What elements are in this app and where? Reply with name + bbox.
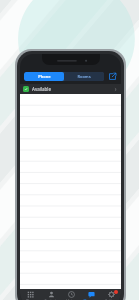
- staticText: History: [66, 299, 77, 300]
- staticText: Messages: [83, 299, 99, 300]
- button[interactable]: Compose: [107, 71, 117, 81]
- button[interactable]: History: [61, 289, 81, 300]
- button[interactable]: Contacts: [41, 289, 61, 300]
- staticText: Rooms: [77, 74, 91, 79]
- button[interactable]: Settings: [101, 289, 121, 300]
- button[interactable]: Available: [20, 84, 121, 94]
- staticText: Phone: [38, 74, 51, 79]
- staticText: Available: [32, 86, 51, 92]
- button[interactable]: Phone: [24, 72, 64, 81]
- staticText: Settings: [105, 299, 118, 300]
- button[interactable]: Rooms: [64, 72, 104, 81]
- staticText: Phone: [26, 299, 36, 300]
- staticText: Contacts: [44, 299, 58, 300]
- button[interactable]: Messages: [81, 289, 101, 300]
- button[interactable]: Phone: [20, 289, 41, 300]
